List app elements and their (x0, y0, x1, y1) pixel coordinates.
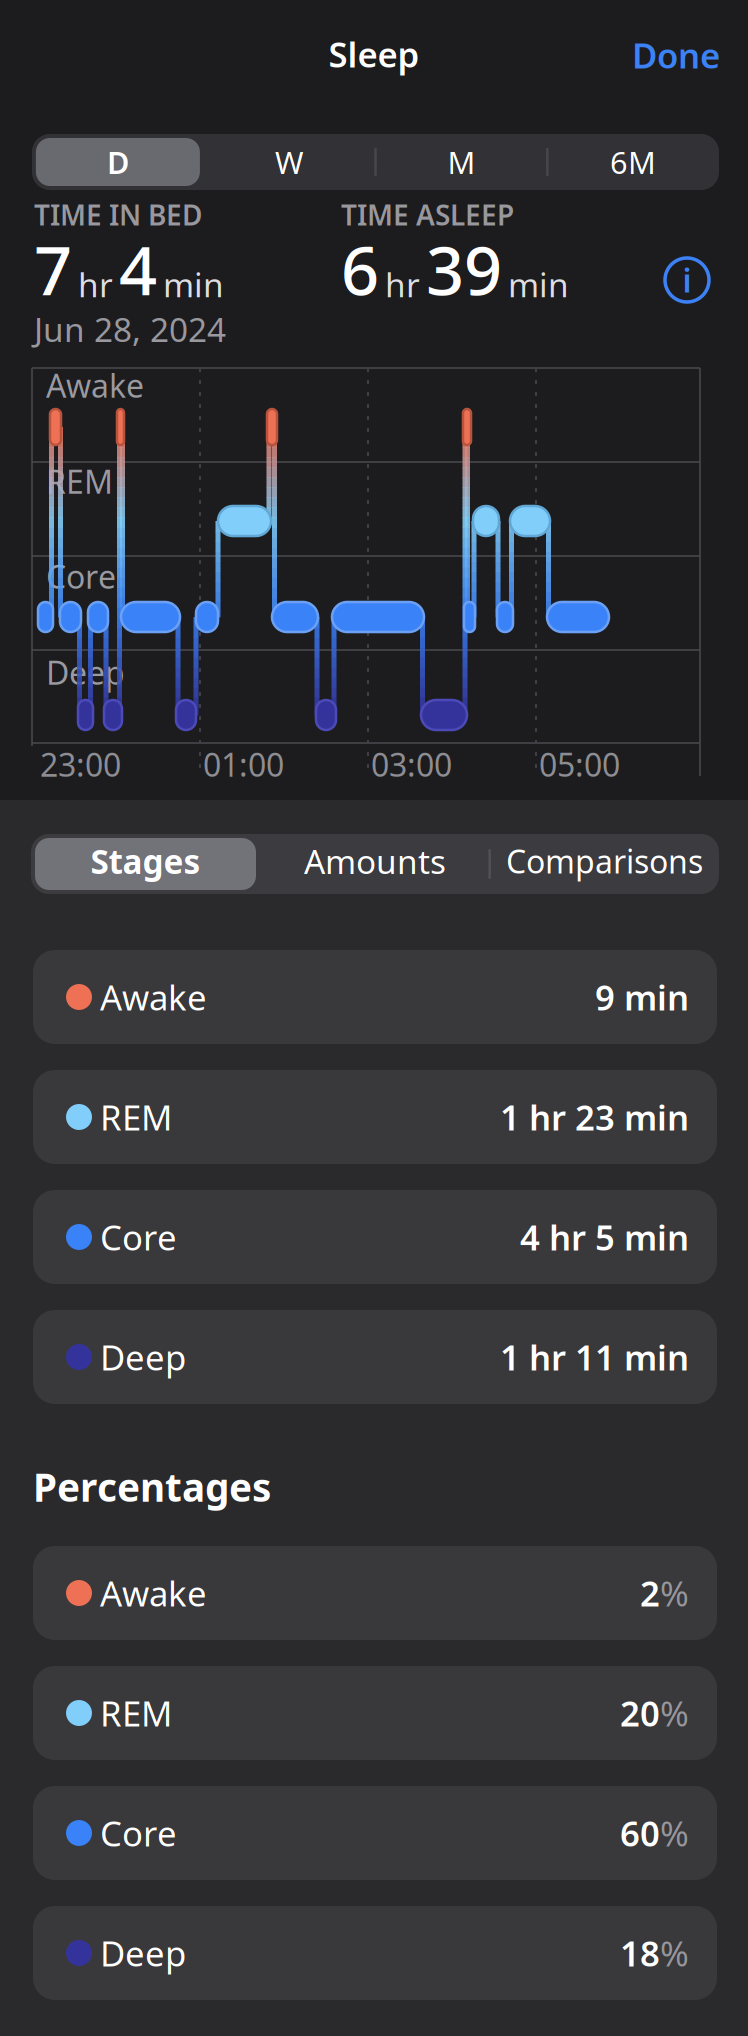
button[interactable]: Done (632, 32, 720, 78)
staticText: 03:00 (371, 743, 452, 785)
button[interactable]: 6M (551, 138, 715, 186)
staticText: 2 (640, 1570, 660, 1616)
staticText: Awake (100, 974, 207, 1020)
staticText: 4 (119, 225, 157, 313)
staticText: hr (78, 262, 113, 307)
button[interactable]: i (665, 258, 709, 302)
staticText: REM (100, 1094, 172, 1140)
button[interactable]: Comparisons (490, 835, 719, 887)
staticText: % (660, 1690, 689, 1736)
staticText: TIME ASLEEP (341, 196, 514, 233)
button[interactable]: Amounts (264, 835, 485, 887)
staticText: M (447, 142, 475, 182)
staticText: Stages (90, 839, 200, 883)
staticText: 6 (341, 225, 379, 313)
staticText: Deep (46, 651, 125, 693)
staticText: Core (46, 555, 116, 597)
staticText: TIME IN BED (34, 196, 202, 233)
staticText: Core (100, 1214, 177, 1260)
staticText: Percentages (33, 1461, 271, 1512)
staticText: Core (100, 1810, 177, 1856)
staticText: 18 (620, 1930, 660, 1976)
staticText: % (660, 1570, 689, 1616)
staticText: Done (632, 32, 720, 78)
staticText: REM (46, 460, 113, 502)
staticText: 7 (34, 225, 72, 313)
staticText: 39 (426, 225, 502, 313)
staticText: 23:00 (40, 743, 121, 785)
staticText: % (660, 1810, 689, 1856)
staticText: Deep (100, 1930, 186, 1976)
staticText: W (275, 142, 304, 182)
staticText: 6M (610, 142, 656, 182)
staticText: hr (385, 262, 420, 307)
staticText: Awake (46, 364, 144, 406)
staticText: REM (100, 1690, 172, 1736)
staticText: 60 (620, 1810, 660, 1856)
staticText: Deep (100, 1334, 186, 1380)
staticText: 1 hr 23 min (500, 1094, 689, 1140)
staticText: i (682, 259, 691, 301)
button[interactable]: Stages (35, 835, 256, 887)
staticText: 9 min (595, 974, 689, 1020)
staticText: % (660, 1930, 689, 1976)
staticText: min (508, 262, 569, 307)
staticText: Jun 28, 2024 (34, 307, 226, 351)
staticText: Sleep (328, 31, 419, 77)
button[interactable]: M (379, 138, 543, 186)
staticText: 4 hr 5 min (520, 1214, 689, 1260)
staticText: Comparisons (506, 840, 703, 882)
staticText: 20 (620, 1690, 660, 1736)
staticText: 1 hr 11 min (500, 1334, 689, 1380)
staticText: Awake (100, 1570, 207, 1616)
staticText: Amounts (304, 839, 446, 883)
staticText: 01:00 (203, 743, 284, 785)
staticText: D (107, 142, 129, 182)
staticText: 05:00 (539, 743, 620, 785)
button[interactable]: W (208, 138, 372, 186)
button[interactable]: D (36, 138, 200, 186)
staticText: min (163, 262, 224, 307)
